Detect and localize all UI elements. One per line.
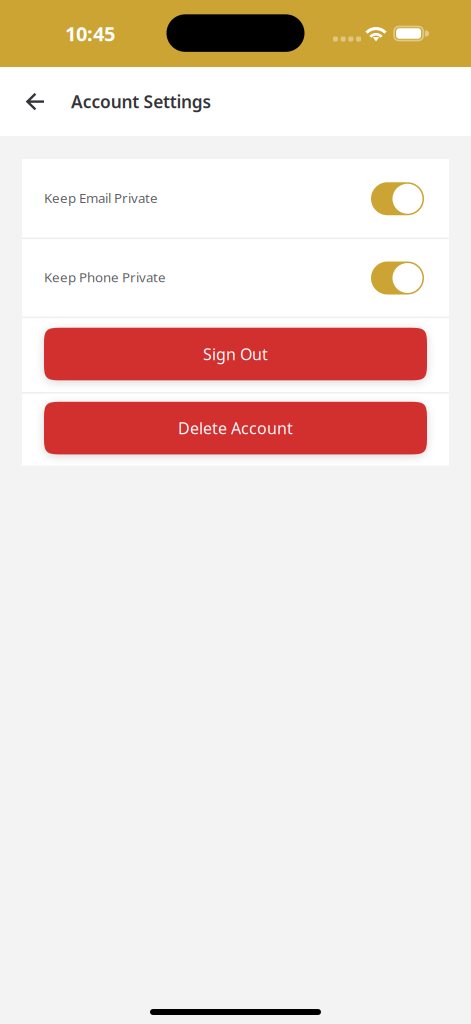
- staticText: 10:45: [65, 20, 115, 47]
- button[interactable]: Sign Out: [22, 329, 449, 381]
- staticText: Account Settings: [71, 90, 211, 113]
- staticText: Sign Out: [203, 343, 268, 365]
- button[interactable]: Delete Account: [22, 403, 449, 456]
- staticText: Keep Phone Private: [44, 268, 166, 286]
- button[interactable]: Back: [0, 67, 71, 136]
- button[interactable]: Keep Email Private: [371, 182, 424, 215]
- staticText: Keep Email Private: [44, 189, 158, 207]
- button[interactable]: Keep Phone Private: [371, 261, 424, 294]
- staticText: Delete Account: [178, 417, 293, 439]
